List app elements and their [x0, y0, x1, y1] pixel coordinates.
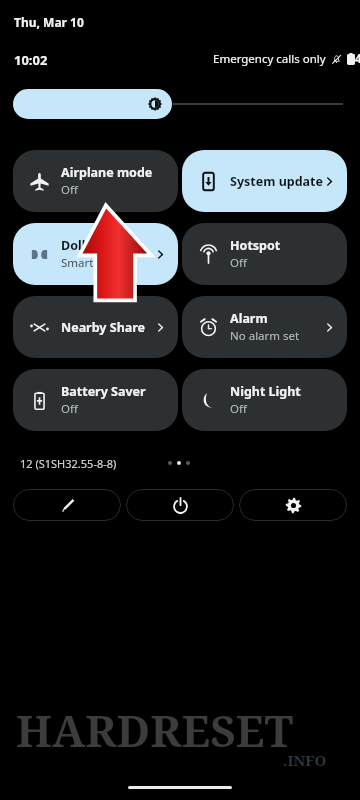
button[interactable]: Edit tiles — [13, 489, 121, 521]
staticText: 42% — [355, 51, 360, 67]
staticText: Smart — [61, 255, 94, 271]
button[interactable]: System update — [182, 150, 347, 212]
staticText: Thu, Mar 10 — [14, 14, 84, 30]
button[interactable]: Nearby Share — [13, 296, 178, 358]
button[interactable]: Night Light — [182, 369, 347, 431]
button[interactable]: Dolby — [13, 223, 178, 285]
staticText: Battery Saver — [61, 383, 146, 400]
staticText: Airplane mode — [61, 164, 153, 181]
staticText: Off — [230, 255, 247, 271]
button[interactable]: Hotspot — [182, 223, 347, 285]
button[interactable]: Alarm — [182, 296, 347, 358]
button[interactable]: Brightness — [13, 89, 347, 119]
staticText: 12 (S1SH32.55-8-8) — [20, 456, 117, 471]
button[interactable]: Battery Saver — [13, 369, 178, 431]
staticText: Off — [61, 401, 78, 417]
staticText: HARDRESET — [16, 700, 294, 760]
staticText: Alarm — [230, 310, 268, 327]
staticText: .INFO — [283, 750, 327, 770]
staticText: Off — [230, 401, 247, 417]
staticText: Hotspot — [230, 237, 281, 254]
staticText: Off — [61, 182, 78, 198]
button[interactable]: Settings — [239, 489, 347, 521]
staticText: 10:02 — [14, 51, 48, 69]
staticText: No alarm set — [230, 328, 300, 344]
staticText: Emergency calls only — [213, 51, 326, 67]
staticText: Dolby — [61, 237, 97, 254]
button[interactable]: Power — [126, 489, 234, 521]
staticText: Night Light — [230, 383, 301, 400]
staticText: System update — [230, 173, 323, 190]
button[interactable]: Airplane mode — [13, 150, 178, 212]
staticText: Nearby Share — [61, 319, 146, 336]
